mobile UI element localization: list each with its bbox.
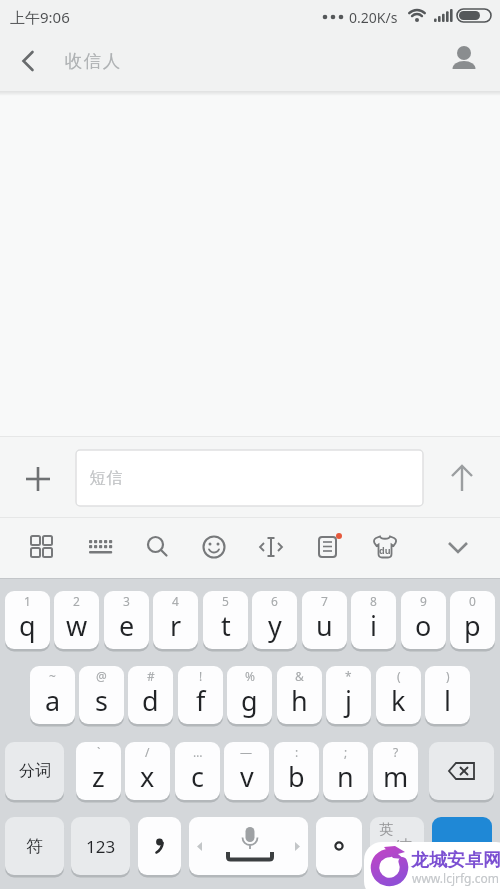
button[interactable]: ! [178,666,223,724]
button[interactable]: & [277,666,322,724]
staticText: ( [397,668,401,684]
button[interactable]: 符 [5,817,64,875]
staticText: t [221,607,231,644]
staticText: y [268,607,282,644]
staticText: # [147,668,155,684]
button[interactable] [80,527,120,567]
staticText: 收信人 [64,50,121,72]
button[interactable] [194,527,234,567]
staticText: e [119,607,135,644]
button[interactable]: # [128,666,173,724]
staticText: s [95,682,108,719]
button[interactable]: 6 [252,591,297,649]
staticText: ! [199,668,203,684]
button[interactable]: % [227,666,272,724]
staticText: & [295,668,304,684]
staticText: i [370,607,377,644]
button[interactable]: 短信 [76,450,423,506]
staticText: du [379,544,391,556]
staticText: 分词 [19,761,51,781]
button[interactable] [438,527,478,567]
button[interactable] [432,817,492,875]
staticText: d [142,682,159,719]
button[interactable]: @ [79,666,124,724]
button[interactable]: 123 [71,817,130,875]
button[interactable]: 5 [203,591,248,649]
button[interactable] [8,42,48,80]
staticText: www.lcjrfg.com [412,870,499,886]
staticText: 上午9:06 [10,7,70,27]
staticText: 短信 [89,468,123,488]
button[interactable]: … [175,742,220,800]
staticText: m [383,758,409,795]
button[interactable]: 9 [401,591,446,649]
button[interactable]: ` [76,742,121,800]
staticText: o [415,607,432,644]
staticText: % [245,668,255,684]
staticText: h [291,682,308,719]
button[interactable]: du [365,527,405,567]
button[interactable]: 0 [450,591,495,649]
button[interactable] [429,742,494,800]
button[interactable]: 3 [104,591,149,649]
staticText: z [92,758,105,795]
button[interactable]: ( [376,666,421,724]
button[interactable]: 2 [54,591,99,649]
button[interactable]: * [326,666,371,724]
button[interactable]: — [224,742,269,800]
button[interactable] [316,817,362,875]
staticText: 9 [420,593,427,609]
staticText: f [196,682,206,719]
staticText: a [45,682,61,719]
button[interactable]: 7 [302,591,347,649]
staticText: 8 [370,593,377,609]
staticText: ; [344,744,348,760]
staticText: * [345,668,352,684]
button[interactable]: 4 [153,591,198,649]
staticText: x [140,758,155,795]
button[interactable]: ~ [30,666,75,724]
button[interactable] [308,527,348,567]
button[interactable] [22,527,62,567]
staticText: c [191,758,204,795]
staticText: 龙城安卓网 [411,849,500,872]
button[interactable]: 8 [351,591,396,649]
button[interactable]: ; [323,742,368,800]
staticText: w [66,607,88,644]
staticText: 符 [26,836,43,857]
button[interactable] [189,817,308,875]
staticText: ? [393,744,399,760]
button[interactable]: : [274,742,319,800]
staticText: 6 [271,593,278,609]
staticText: ` [97,744,101,760]
button[interactable]: / [125,742,170,800]
staticText: 0.20K/s [349,8,398,27]
button[interactable]: 英 [370,817,424,875]
staticText: 2 [73,593,80,609]
staticText: 3 [123,593,130,609]
staticText: 1 [24,593,31,609]
staticText: k [391,682,406,719]
staticText: v [240,758,254,795]
button[interactable]: ) [425,666,470,724]
staticText: l [444,682,451,719]
staticText: p [464,607,481,644]
button[interactable]: 1 [5,591,50,649]
staticText: 0 [469,593,476,609]
button[interactable] [138,817,181,875]
button[interactable] [137,527,177,567]
button[interactable] [18,459,58,499]
staticText: ~ [49,668,56,684]
staticText: : [295,744,299,760]
staticText: / [145,744,150,760]
button[interactable] [251,527,291,567]
button[interactable] [442,458,482,498]
staticText: q [19,607,36,644]
staticText: /中 [394,835,414,854]
button[interactable]: ? [373,742,418,800]
button[interactable]: 分词 [5,742,64,800]
button[interactable] [443,38,485,80]
staticText: b [288,758,305,795]
staticText: — [240,744,253,760]
staticText: u [316,607,333,644]
